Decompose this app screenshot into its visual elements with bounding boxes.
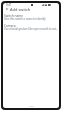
- staticText: Switch name: [4, 14, 24, 18]
- staticText: Give this switch a name to identify: [4, 17, 46, 21]
- staticText: Camera: [4, 24, 16, 28]
- button[interactable]: Switch name: [3, 14, 59, 22]
- staticText: Use a facial gesture like open mouth to …: [4, 27, 58, 31]
- button[interactable]: Camera: [3, 24, 59, 32]
- button[interactable]: Back: [4, 6, 10, 12]
- staticText: 9:41: [6, 3, 12, 7]
- staticText: Add switch: [10, 7, 31, 12]
